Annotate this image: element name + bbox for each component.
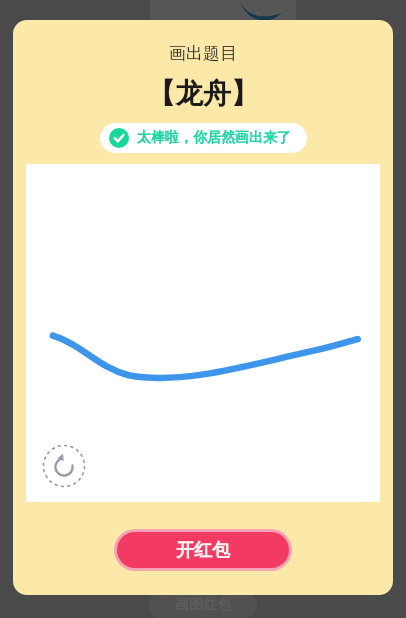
staticText: 太棒啦，你居然画出来了 bbox=[137, 129, 291, 147]
button[interactable]: 开红包 bbox=[114, 529, 292, 571]
button[interactable]: 撤销 bbox=[42, 444, 86, 488]
staticText: 开红包 bbox=[176, 539, 230, 562]
staticText: 【龙舟】 bbox=[147, 76, 259, 111]
button[interactable]: 太棒啦，你居然画出来了 bbox=[100, 123, 307, 153]
staticText: 画图红包 bbox=[175, 596, 231, 614]
staticText: 画出题目 bbox=[169, 43, 237, 64]
